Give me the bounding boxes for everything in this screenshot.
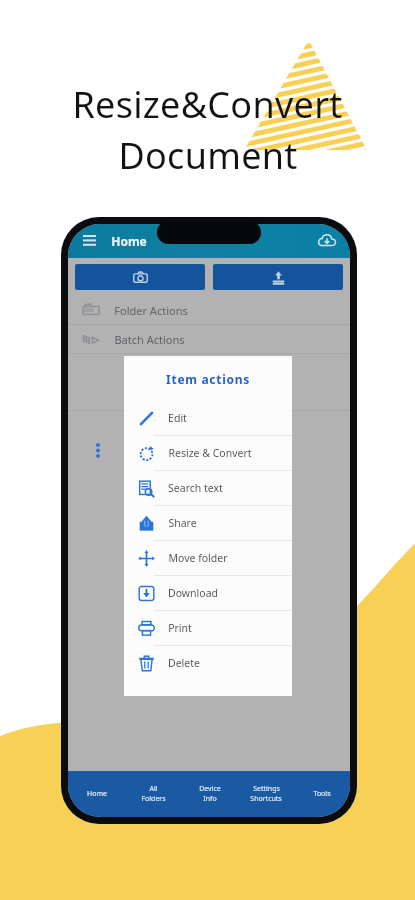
- staticText: Folder Actions: [114, 303, 188, 318]
- staticText: Document: [118, 131, 298, 180]
- staticText: Device: [199, 784, 221, 794]
- button[interactable]: Share: [124, 506, 292, 540]
- staticText: Info: [203, 794, 217, 804]
- staticText: Edit: [168, 411, 187, 425]
- staticText: Item actions: [166, 371, 250, 387]
- staticText: Move folder: [168, 551, 228, 565]
- staticText: All: [149, 784, 158, 794]
- button[interactable]: Search text: [124, 471, 292, 505]
- staticText: Search text: [168, 481, 223, 495]
- button[interactable]: Settings: [238, 771, 294, 817]
- staticText: Tools: [313, 789, 331, 799]
- button[interactable]: Edit: [124, 401, 292, 435]
- button[interactable]: Folder Actions: [68, 296, 350, 324]
- staticText: Delete: [168, 656, 200, 670]
- staticText: Home: [111, 233, 147, 249]
- button[interactable]: Print: [124, 611, 292, 645]
- button[interactable]: Tools: [294, 771, 350, 817]
- button[interactable]: Device: [182, 771, 238, 817]
- staticText: Settings: [253, 784, 280, 794]
- staticText: Print: [168, 621, 192, 635]
- button[interactable]: Take photo: [75, 264, 205, 290]
- staticText: Shortcuts: [250, 794, 282, 804]
- button[interactable]: Home: [68, 771, 125, 817]
- staticText: Share: [168, 516, 197, 530]
- staticText: Resize & Convert: [168, 446, 252, 460]
- staticText: Download: [168, 586, 218, 600]
- button[interactable]: All: [125, 771, 182, 817]
- button[interactable]: Delete: [124, 646, 292, 680]
- button[interactable]: Batch Actions: [68, 325, 350, 353]
- button[interactable]: Move folder: [124, 541, 292, 575]
- button[interactable]: Download: [124, 576, 292, 610]
- button[interactable]: Cloud download: [314, 228, 340, 254]
- staticText: Resize&Convert: [72, 80, 343, 129]
- button[interactable]: Resize & Convert: [124, 436, 292, 470]
- staticText: Folders: [141, 794, 166, 804]
- staticText: Batch Actions: [114, 332, 185, 347]
- staticText: Home: [87, 789, 107, 799]
- button[interactable]: Upload file: [213, 264, 343, 290]
- button[interactable]: More options: [88, 436, 108, 464]
- button[interactable]: Open navigation menu: [78, 230, 100, 252]
